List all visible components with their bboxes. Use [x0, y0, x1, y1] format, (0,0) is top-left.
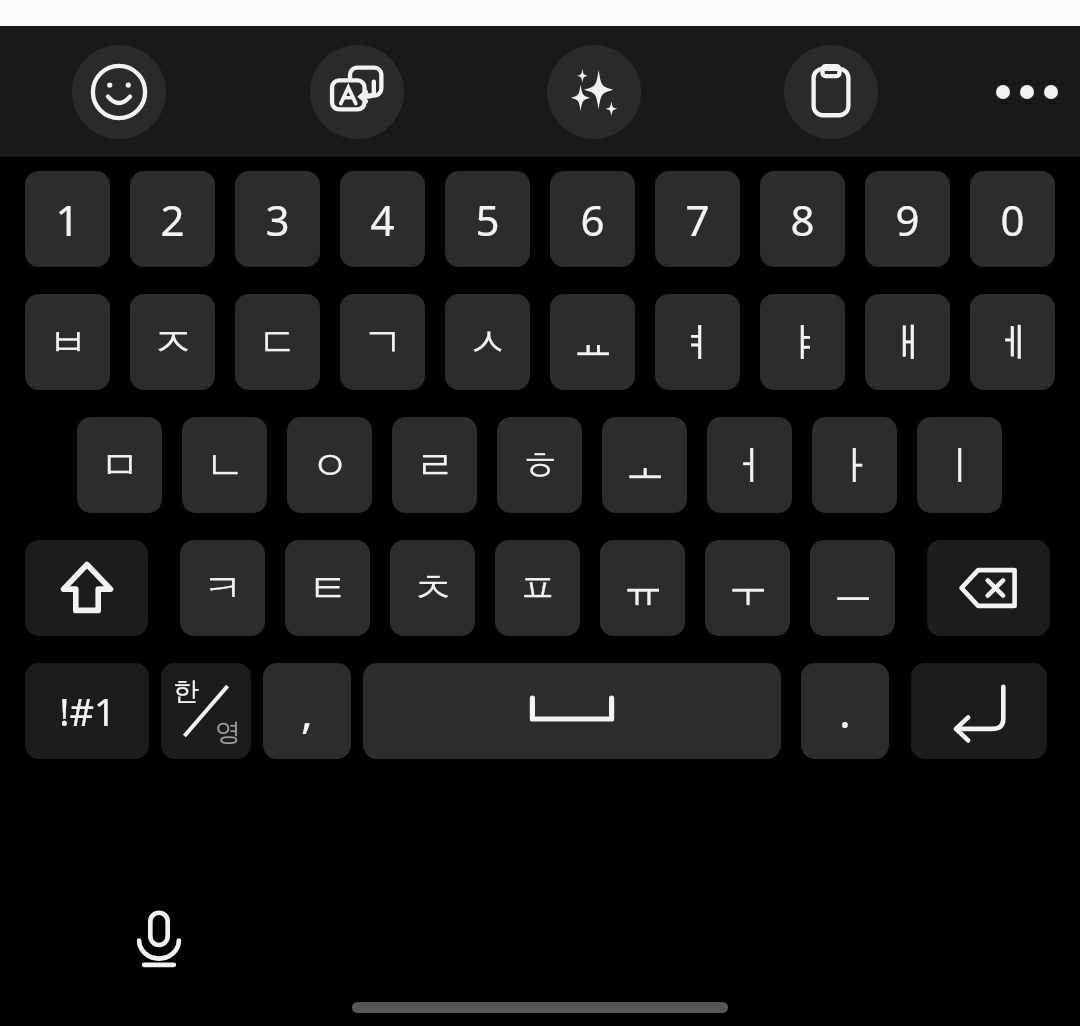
button[interactable]: ㅡ	[810, 540, 895, 636]
button[interactable]: ㅏ	[812, 417, 897, 513]
staticText: ㅠ	[623, 563, 663, 613]
button[interactable]: 1	[25, 171, 110, 267]
staticText: ㅡ	[833, 563, 873, 613]
button[interactable]: .	[801, 663, 889, 759]
staticText: ㅣ	[940, 440, 980, 490]
staticText: 한	[173, 675, 199, 708]
button[interactable]: ㅇ	[287, 417, 372, 513]
button[interactable]: Emoji	[72, 45, 166, 139]
staticText: ㅑ	[783, 317, 823, 367]
staticText: 4	[370, 191, 395, 248]
button[interactable]: ㅜ	[705, 540, 790, 636]
button[interactable]: More options	[980, 45, 1074, 139]
staticText: ㅎ	[520, 440, 560, 490]
staticText: ㅅ	[468, 317, 508, 367]
button[interactable]: Voice input	[118, 899, 200, 981]
staticText: ㅋ	[203, 563, 243, 613]
staticText: ㅜ	[728, 563, 768, 613]
staticText: 7	[685, 191, 710, 248]
button[interactable]: ㄴ	[182, 417, 267, 513]
staticText: ㅌ	[308, 563, 348, 613]
staticText: ㅈ	[153, 317, 193, 367]
staticText: 2	[160, 191, 185, 248]
button[interactable]: ㅂ	[25, 294, 110, 390]
button[interactable]: ㅠ	[600, 540, 685, 636]
staticText: ㅇ	[310, 440, 350, 490]
staticText: 0	[1000, 191, 1025, 248]
staticText: ㅁ	[100, 440, 140, 490]
button[interactable]: !#1	[25, 663, 149, 759]
button[interactable]: ㅋ	[180, 540, 265, 636]
button[interactable]: ㅛ	[550, 294, 635, 390]
staticText: .	[839, 681, 851, 741]
button[interactable]: 4	[340, 171, 425, 267]
staticText: ㅔ	[993, 317, 1033, 367]
staticText: 6	[580, 191, 605, 248]
staticText: 8	[790, 191, 815, 248]
button[interactable]: ㄱ	[340, 294, 425, 390]
staticText: 영	[215, 716, 241, 749]
button[interactable]: ㅔ	[970, 294, 1055, 390]
button[interactable]: 3	[235, 171, 320, 267]
button[interactable]: ㅐ	[865, 294, 950, 390]
button[interactable]: ,	[263, 663, 351, 759]
button[interactable]: ㅓ	[707, 417, 792, 513]
button[interactable]: ㅅ	[445, 294, 530, 390]
staticText: 1	[55, 191, 80, 248]
button[interactable]: ㅎ	[497, 417, 582, 513]
button[interactable]: ㅑ	[760, 294, 845, 390]
button[interactable]: 8	[760, 171, 845, 267]
staticText: ㅕ	[678, 317, 718, 367]
button[interactable]: ㅊ	[390, 540, 475, 636]
button[interactable]: 5	[445, 171, 530, 267]
staticText: ㄷ	[258, 317, 298, 367]
button[interactable]: Clipboard	[784, 45, 878, 139]
button[interactable]: ㅁ	[77, 417, 162, 513]
button[interactable]: Writing assist	[547, 45, 641, 139]
staticText: ㄱ	[363, 317, 403, 367]
button[interactable]: Enter	[911, 663, 1047, 759]
button[interactable]: 7	[655, 171, 740, 267]
staticText: ㅊ	[413, 563, 453, 613]
button[interactable]: ㅈ	[130, 294, 215, 390]
button[interactable]: ㅕ	[655, 294, 740, 390]
staticText: 3	[265, 191, 290, 248]
button[interactable]: ㅗ	[602, 417, 687, 513]
staticText: ㄹ	[415, 440, 455, 490]
staticText: ㅂ	[48, 317, 88, 367]
button[interactable]: 0	[970, 171, 1055, 267]
staticText: ㅐ	[888, 317, 928, 367]
button[interactable]: 2	[130, 171, 215, 267]
staticText: 5	[475, 191, 500, 248]
button[interactable]: Korean English toggle	[161, 663, 251, 759]
button[interactable]: ㅣ	[917, 417, 1002, 513]
staticText: ㅗ	[625, 440, 665, 490]
button[interactable]: Backspace	[927, 540, 1050, 636]
staticText: ㅛ	[573, 317, 613, 367]
staticText: ㄴ	[205, 440, 245, 490]
button[interactable]: Shift	[25, 540, 148, 636]
button[interactable]: Space	[363, 663, 781, 759]
button[interactable]: Translate	[310, 45, 404, 139]
staticText: 9	[895, 191, 920, 248]
button[interactable]: ㄹ	[392, 417, 477, 513]
button[interactable]: ㄷ	[235, 294, 320, 390]
staticText: ㅏ	[835, 440, 875, 490]
staticText: ,	[301, 681, 313, 741]
button[interactable]: ㅌ	[285, 540, 370, 636]
button[interactable]: 9	[865, 171, 950, 267]
staticText: ㅓ	[730, 440, 770, 490]
button[interactable]: 6	[550, 171, 635, 267]
staticText: ㅍ	[518, 563, 558, 613]
staticText: !#1	[59, 685, 116, 737]
button[interactable]: ㅍ	[495, 540, 580, 636]
